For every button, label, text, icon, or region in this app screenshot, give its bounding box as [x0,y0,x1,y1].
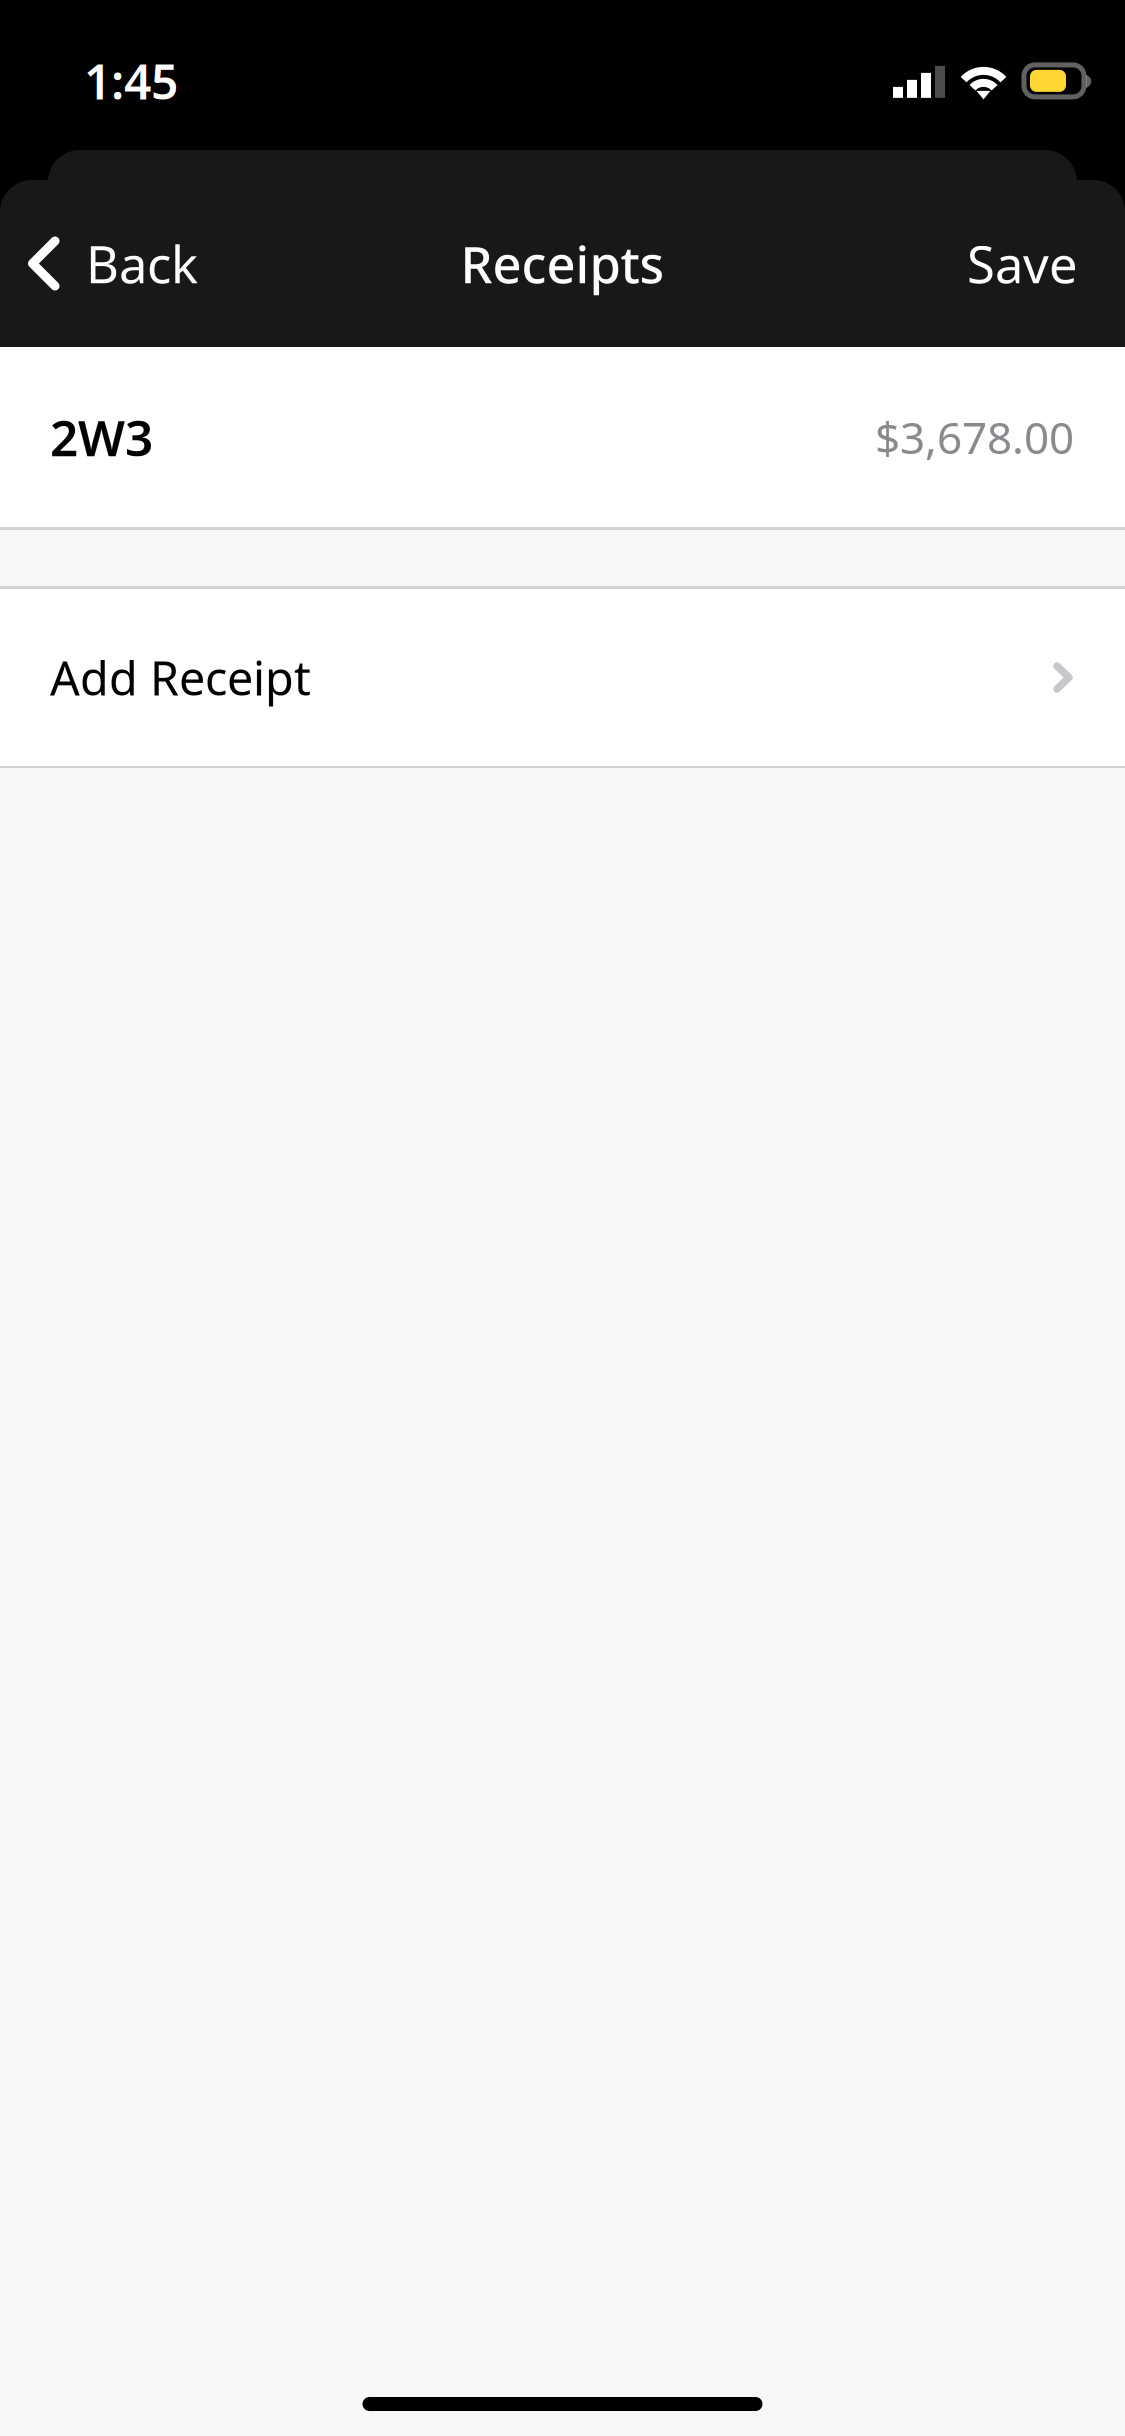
staticText: 1:45 [84,49,178,113]
staticText: Receipts [460,230,664,297]
staticText: 2W3 [50,404,153,470]
button[interactable]: Back [0,180,222,347]
staticText: Save [967,230,1078,297]
button[interactable]: Save [937,180,1125,347]
button[interactable]: 2W3 [0,347,1125,527]
button[interactable]: Add Receipt [0,589,1125,766]
staticText: Add Receipt [50,646,311,708]
staticText: $3,678.00 [875,408,1074,466]
staticText: Back [86,230,198,297]
